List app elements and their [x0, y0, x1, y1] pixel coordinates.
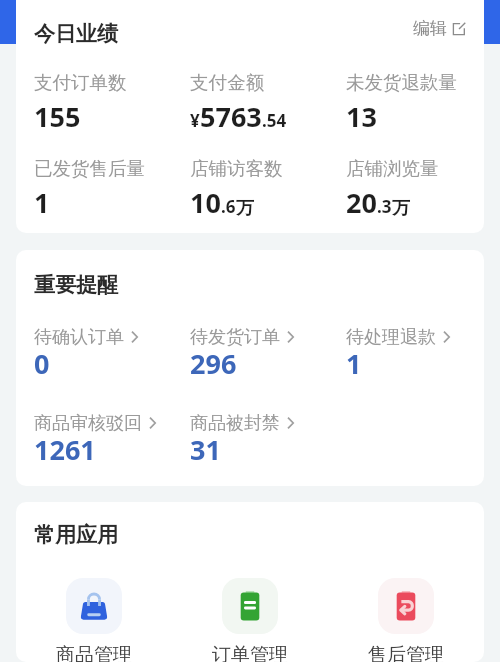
button[interactable]: 支付金额 — [172, 71, 328, 127]
staticText: 待处理退款 — [346, 326, 436, 349]
staticText: 1 — [34, 184, 50, 221]
staticText: 0 — [34, 345, 50, 382]
staticText: .6 — [221, 195, 236, 218]
staticText: 店铺浏览量 — [346, 157, 439, 180]
staticText: 商品审核驳回 — [34, 412, 142, 435]
button[interactable]: 编辑 — [409, 15, 470, 42]
staticText: 20 — [346, 184, 377, 221]
staticText: 店铺访客数 — [190, 157, 283, 180]
staticText: 售后管理 — [368, 643, 444, 662]
staticText: 商品管理 — [56, 643, 132, 662]
staticText: .54 — [262, 109, 287, 132]
staticText: 10 — [190, 184, 221, 221]
staticText: 重要提醒 — [34, 272, 118, 298]
button[interactable]: 已发货售后量 — [16, 157, 172, 213]
button[interactable]: 售后管理 — [328, 578, 484, 662]
staticText: 13 — [346, 98, 377, 135]
staticText: 31 — [190, 431, 221, 468]
staticText: 编辑 — [413, 18, 447, 39]
button[interactable]: 待确认订单 — [16, 326, 172, 382]
staticText: 待确认订单 — [34, 326, 124, 349]
button[interactable]: 店铺浏览量 — [328, 157, 484, 213]
staticText: 1261 — [34, 431, 96, 468]
staticText: 今日业绩 — [34, 21, 118, 47]
button[interactable]: 商品管理 — [16, 578, 172, 662]
staticText: 常用应用 — [34, 522, 118, 548]
staticText: 待发货订单 — [190, 326, 280, 349]
button[interactable]: 商品审核驳回 — [16, 412, 172, 468]
staticText: 155 — [34, 98, 81, 135]
staticText: 商品被封禁 — [190, 412, 280, 435]
staticText: 订单管理 — [212, 643, 288, 662]
staticText: 支付金额 — [190, 71, 264, 94]
staticText: 5763 — [200, 98, 262, 135]
button[interactable]: 未发货退款量 — [328, 71, 484, 127]
button[interactable]: 待处理退款 — [328, 326, 484, 382]
button[interactable]: 待发货订单 — [172, 326, 328, 382]
staticText: ¥ — [190, 109, 200, 132]
staticText: 已发货售后量 — [34, 157, 145, 180]
staticText: 万 — [236, 197, 254, 220]
button[interactable]: 支付订单数 — [16, 71, 172, 127]
staticText: 万 — [392, 197, 410, 220]
button[interactable]: 商品被封禁 — [172, 412, 328, 468]
button[interactable]: 店铺访客数 — [172, 157, 328, 213]
staticText: 296 — [190, 345, 237, 382]
staticText: 支付订单数 — [34, 71, 127, 94]
staticText: 未发货退款量 — [346, 71, 457, 94]
staticText: 1 — [346, 345, 362, 382]
staticText: .3 — [377, 195, 392, 218]
button[interactable]: 订单管理 — [172, 578, 328, 662]
